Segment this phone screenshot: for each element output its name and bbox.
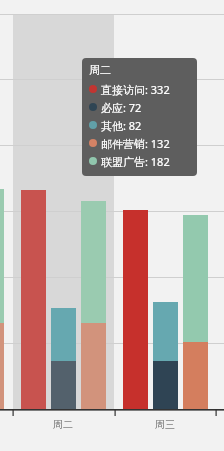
button[interactable]: 周二	[47, 416, 79, 432]
staticText: 周二	[53, 418, 73, 431]
other: series marker	[89, 121, 97, 129]
button[interactable]: 周三	[149, 416, 181, 432]
button[interactable]: 周二	[82, 58, 197, 176]
staticText: 邮件营销: 132	[101, 136, 170, 151]
staticText: 必应: 72	[101, 100, 142, 115]
staticText: 周二	[89, 63, 111, 77]
other: series marker	[89, 139, 97, 147]
other: series marker	[89, 157, 97, 165]
staticText: 直接访问: 332	[101, 82, 170, 97]
other: series marker	[89, 85, 97, 93]
staticText: 其他: 82	[101, 118, 142, 133]
staticText: 周三	[155, 418, 175, 431]
staticText: 联盟广告: 182	[101, 154, 170, 169]
other: series marker	[89, 103, 97, 111]
